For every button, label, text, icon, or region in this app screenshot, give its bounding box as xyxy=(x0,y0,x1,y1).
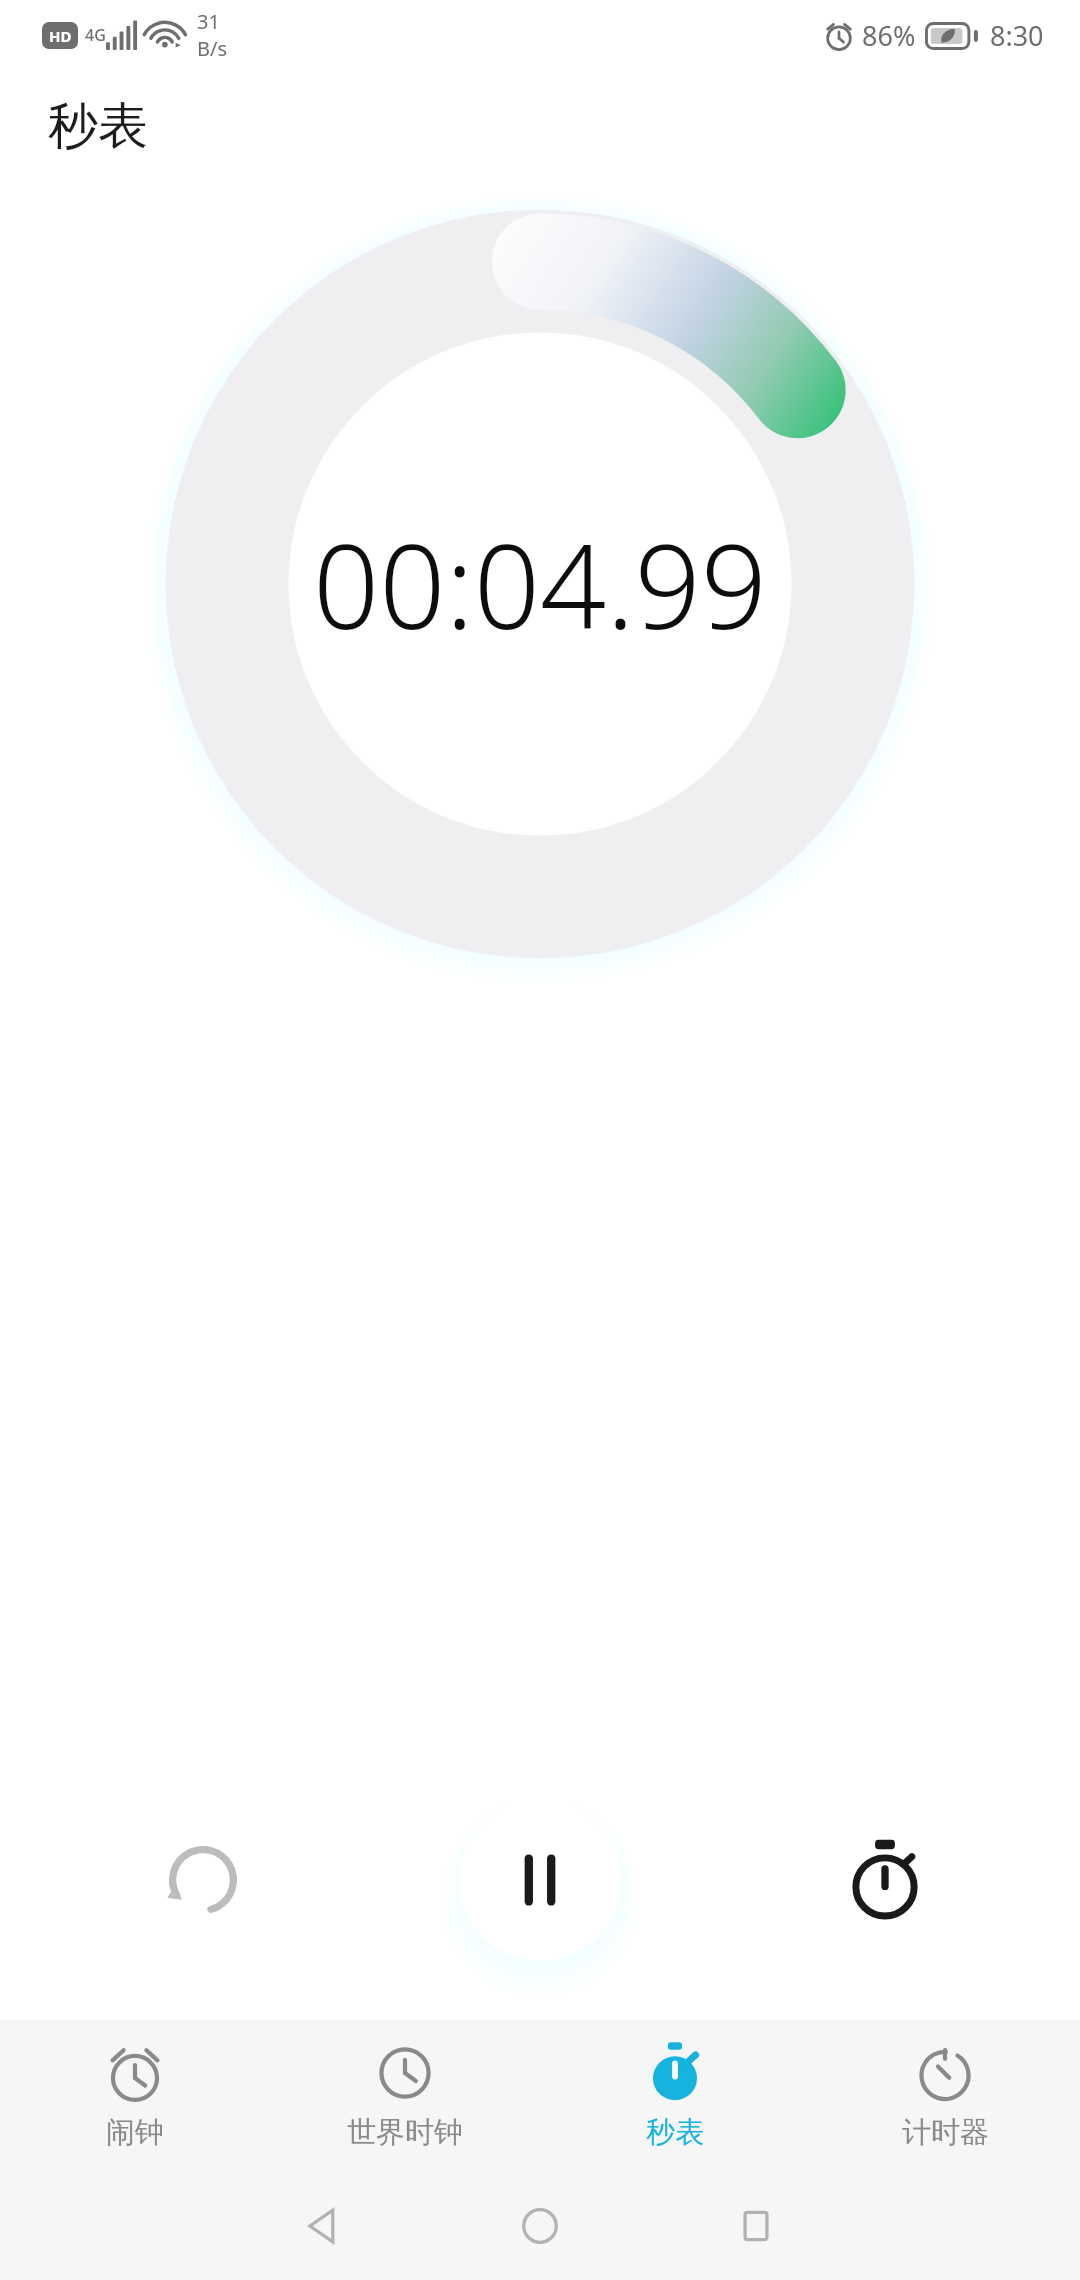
staticText: B/s xyxy=(197,35,228,62)
button[interactable]: 返回 xyxy=(216,2172,432,2280)
staticText: 秒表 xyxy=(646,2114,704,2151)
button[interactable]: 暂停 xyxy=(459,1799,621,1961)
staticText: 闹钟 xyxy=(106,2114,164,2151)
staticText: 8:30 xyxy=(990,17,1044,54)
button[interactable]: 秒表 xyxy=(540,2020,810,2172)
staticText: 秒表 xyxy=(48,95,148,158)
button[interactable]: 计次 xyxy=(830,1825,940,1935)
staticText: 计时器 xyxy=(902,2114,989,2151)
button[interactable]: 重置 xyxy=(148,1825,258,1935)
staticText: 4G xyxy=(85,24,106,46)
button[interactable]: 计时器 xyxy=(810,2020,1080,2172)
button[interactable]: 主屏幕 xyxy=(432,2172,648,2280)
staticText: 00:04.99 xyxy=(313,505,768,663)
staticText: 世界时钟 xyxy=(347,2114,463,2151)
staticText: 31 xyxy=(197,8,220,35)
button[interactable]: 最近任务 xyxy=(648,2172,864,2280)
staticText: 86% xyxy=(862,17,916,54)
staticText: HD xyxy=(49,26,72,46)
button[interactable]: 世界时钟 xyxy=(270,2020,540,2172)
button[interactable]: 闹钟 xyxy=(0,2020,270,2172)
